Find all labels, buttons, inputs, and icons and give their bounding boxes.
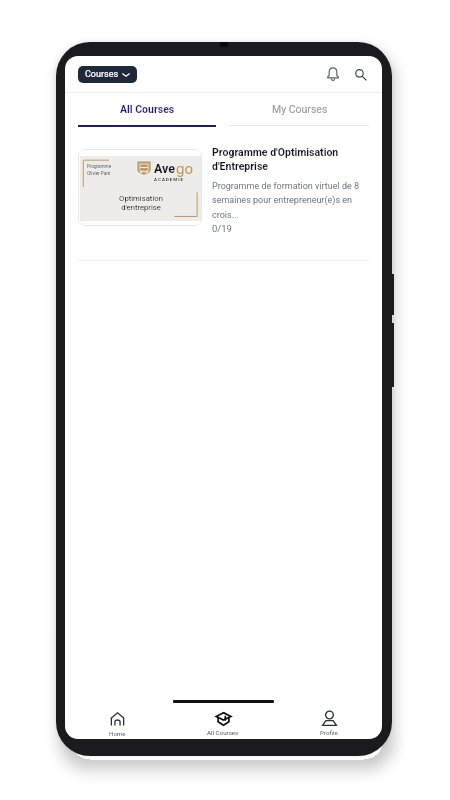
staticText: Profile — [320, 729, 338, 736]
button[interactable]: Programme Olivier Paré — [65, 127, 382, 261]
button[interactable]: My Courses — [223, 93, 376, 125]
staticText: Programme de formation virtuel de 8 sema… — [212, 181, 369, 221]
staticText: Ave — [154, 161, 176, 176]
button[interactable]: Courses — [78, 66, 137, 83]
staticText: go — [176, 160, 193, 178]
staticText: ACADEMIE — [154, 177, 185, 182]
staticText: Home — [109, 730, 126, 737]
staticText: Programme d'Optimisation d'Entreprise — [212, 146, 369, 172]
staticText: All Courses — [207, 729, 239, 736]
staticText: Optimisation — [119, 194, 163, 203]
staticText: Programme Olivier Paré — [87, 164, 112, 176]
button[interactable]: Search — [348, 62, 372, 86]
button[interactable]: All Courses — [170, 708, 276, 739]
button[interactable]: Home — [65, 708, 170, 739]
staticText: Courses — [85, 69, 119, 80]
button[interactable]: All Courses — [71, 93, 223, 125]
button[interactable]: Notifications — [321, 62, 345, 86]
button[interactable]: Profile — [276, 708, 382, 739]
staticText: 0/19 — [212, 223, 232, 234]
staticText: All Courses — [120, 103, 175, 115]
staticText: d'entreprise — [121, 203, 161, 212]
staticText: My Courses — [272, 103, 328, 115]
